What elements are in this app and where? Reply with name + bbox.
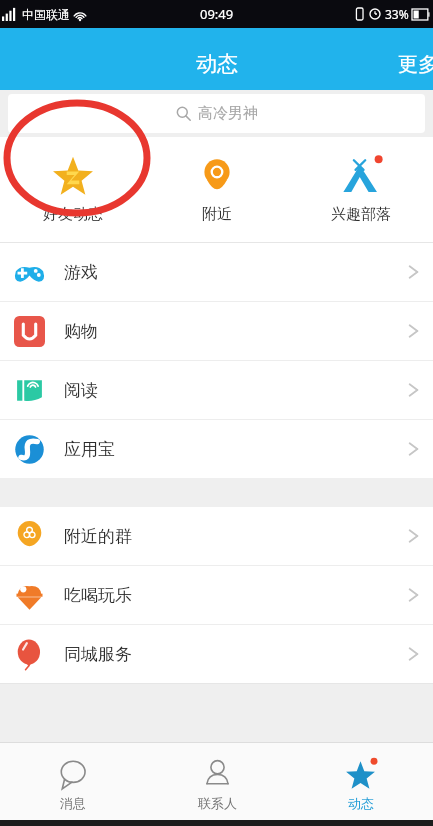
button[interactable]: 动态 xyxy=(196,51,238,77)
staticText: 吃喝玩乐 xyxy=(64,585,132,606)
button[interactable]: 阅读 xyxy=(0,361,433,419)
button[interactable]: 联系人 xyxy=(145,743,289,826)
staticText: 高冷男神 xyxy=(198,104,258,123)
staticText: 购物 xyxy=(64,321,98,342)
staticText: 游戏 xyxy=(64,262,98,283)
staticText: 应用宝 xyxy=(64,439,115,460)
staticText: 兴趣部落 xyxy=(331,205,391,224)
button[interactable]: 游戏 xyxy=(0,243,433,301)
button[interactable]: 好友动态 xyxy=(0,137,145,242)
staticText: 中国联通 xyxy=(22,7,70,22)
button[interactable]: 更多 xyxy=(398,52,433,77)
button[interactable]: 兴趣部落 xyxy=(289,137,433,242)
staticText: 消息 xyxy=(60,795,86,811)
staticText: 同城服务 xyxy=(64,644,132,665)
button[interactable]: 消息 xyxy=(0,743,145,826)
staticText: 阅读 xyxy=(64,380,98,401)
staticText: 附近的群 xyxy=(64,526,132,547)
button[interactable]: 附近 xyxy=(145,137,289,242)
staticText: 联系人 xyxy=(198,795,237,811)
button[interactable]: 附近的群 xyxy=(0,507,433,565)
button[interactable]: 应用宝 xyxy=(0,420,433,478)
staticText: 09:49 xyxy=(200,5,234,23)
staticText: 好友动态 xyxy=(43,205,103,224)
button[interactable]: 购物 xyxy=(0,302,433,360)
button[interactable]: 吃喝玩乐 xyxy=(0,566,433,624)
button[interactable]: 动态 xyxy=(289,743,433,826)
staticText: 动态 xyxy=(348,795,374,811)
button[interactable]: 同城服务 xyxy=(0,625,433,683)
staticText: 附近 xyxy=(202,205,232,224)
button[interactable]: 高冷男神 xyxy=(8,94,425,133)
staticText: 33% xyxy=(385,6,409,22)
